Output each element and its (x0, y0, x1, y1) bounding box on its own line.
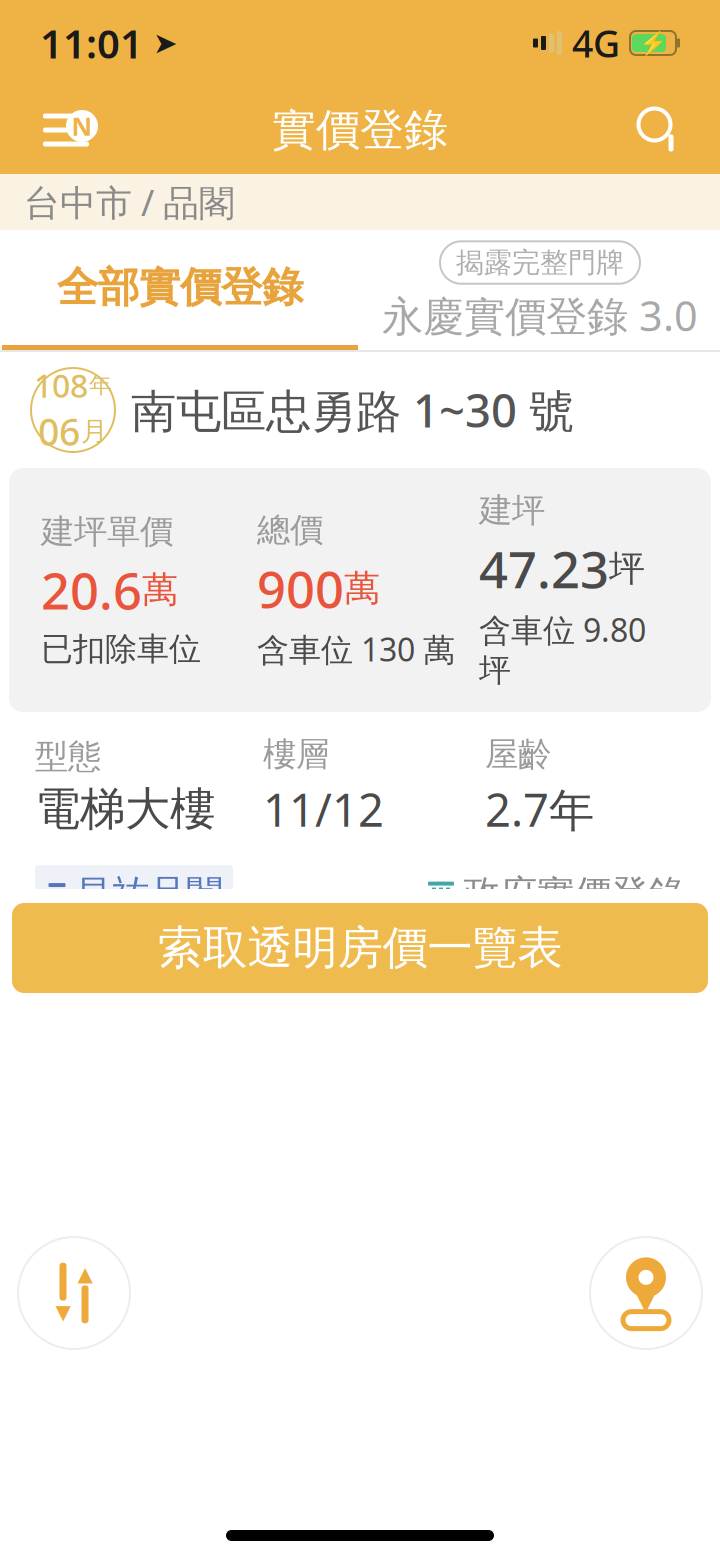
button[interactable]: 台中市 / 品閣 (0, 162, 235, 242)
staticText: ➤ (143, 26, 178, 60)
button[interactable]: 索取透明房價一覽表 (0, 903, 720, 993)
staticText: 11:01 (40, 16, 143, 69)
button[interactable]: 108 (0, 947, 720, 1542)
button[interactable]: Search (630, 102, 690, 158)
button[interactable]: Sort (18, 1237, 130, 1349)
staticText: 實價登錄 (272, 103, 448, 157)
staticText: ▼ (635, 1285, 656, 1316)
staticText: 總價 (257, 510, 323, 551)
staticText: 06 (38, 406, 80, 456)
staticText: 南屯區忠勇路 1~30 號 (131, 975, 574, 1035)
button[interactable]: Menu (30, 102, 102, 158)
staticText: 20.6 (41, 556, 142, 623)
staticText: 全部實價登錄 (57, 262, 303, 313)
staticText: 11/12 (263, 779, 384, 839)
button[interactable]: Map (590, 1237, 702, 1349)
staticText: 永慶實價登錄 3.0 (382, 288, 698, 343)
staticText: ▲ (77, 1263, 92, 1285)
staticText: 型態 (35, 1331, 101, 1372)
staticText: 47.23 (479, 535, 609, 602)
staticText: 900 (257, 555, 344, 622)
staticText: 台中市 / 品閣 (24, 178, 235, 226)
staticText: 揭露完整門牌 (456, 245, 624, 280)
staticText: 108 (34, 364, 88, 406)
staticText: 2.7年 (485, 779, 594, 839)
staticText: 含車位 9.80 坪 (479, 1203, 646, 1285)
staticText: 昌祐品閣 (75, 871, 223, 917)
button[interactable]: 全部實價登錄 (0, 230, 360, 350)
staticText: 屋齡 (485, 734, 551, 775)
staticText: ⚡ (639, 30, 667, 56)
button[interactable]: 揭露完整門牌 (360, 230, 720, 350)
staticText: 坪 (609, 546, 645, 591)
staticText: ▼ (55, 1301, 70, 1323)
staticText: 電梯大樓 (35, 781, 215, 837)
button[interactable]: 108 (0, 352, 720, 947)
staticText: 月 (81, 415, 108, 448)
staticText: 建坪單價 (41, 511, 173, 552)
staticText: 年 (89, 966, 112, 994)
staticText: 含車位 9.80 坪 (479, 608, 646, 690)
staticText: 含車位 130 萬 (257, 628, 455, 670)
staticText: 樓層 (263, 734, 329, 775)
staticText: 已扣除車位 (41, 629, 201, 669)
staticText: 型態 (35, 736, 101, 777)
staticText: 含車位計算 (41, 1224, 201, 1264)
staticText: 108 (34, 959, 88, 1001)
staticText: 南屯區忠勇路 1~30 號 (131, 380, 574, 440)
staticText: 年 (89, 371, 112, 399)
staticText: 政府實價登錄 (463, 871, 685, 917)
staticText: 建坪 (479, 490, 545, 531)
staticText: 4G (572, 18, 620, 68)
staticText: 萬 (344, 566, 380, 610)
staticText: 索取透明房價一覽表 (157, 920, 562, 976)
staticText: 萬 (142, 568, 178, 612)
staticText: N (71, 109, 92, 143)
